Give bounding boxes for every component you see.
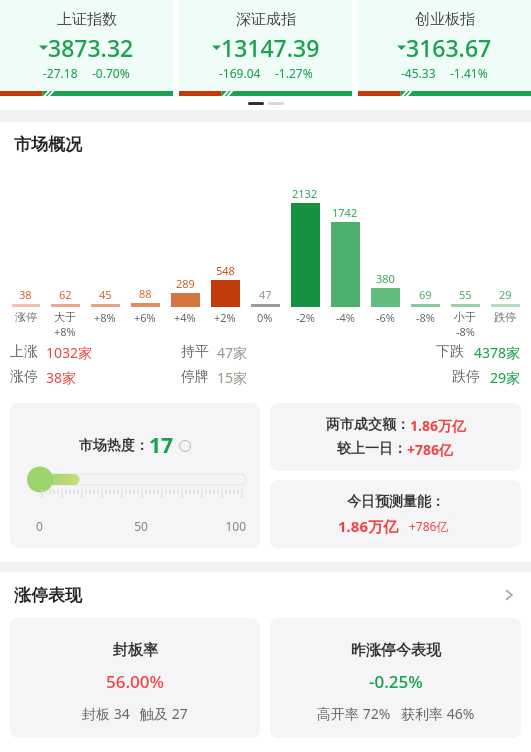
staticText: 13147.39 — [221, 32, 320, 63]
staticText: 0 — [36, 518, 106, 534]
staticText: 涨停 — [15, 310, 37, 324]
staticText: 2132 — [292, 186, 318, 201]
staticText: -0.70% — [92, 65, 130, 81]
staticText: 56.00% — [106, 670, 165, 693]
button[interactable]: 两市成交额： — [270, 403, 521, 471]
staticText: -8% — [456, 324, 475, 339]
other: 帮助 — [179, 440, 191, 452]
staticText: 上证指数 — [57, 10, 117, 29]
staticText: 47家 — [217, 343, 248, 362]
staticText: -6% — [376, 310, 395, 325]
staticText: 深证成指 — [236, 10, 296, 29]
staticText: 上涨 — [10, 343, 38, 361]
staticText: 38家 — [46, 368, 77, 387]
staticText: 3873.32 — [48, 32, 134, 63]
staticText: 289 — [176, 276, 195, 291]
staticText: +8% — [54, 324, 76, 339]
staticText: 55 — [459, 287, 472, 302]
staticText: -1.27% — [275, 65, 313, 81]
staticText: 4378家 — [474, 343, 521, 362]
staticText: 下跌 — [436, 343, 464, 361]
staticText: -45.33 — [401, 65, 436, 81]
button[interactable]: 市场热度： — [10, 403, 260, 548]
staticText: 1.86万亿 — [338, 516, 398, 536]
staticText: 47 — [259, 287, 272, 302]
staticText: 两市成交额： — [326, 416, 410, 434]
staticText: -2% — [296, 310, 315, 325]
staticText: 15家 — [217, 368, 248, 387]
staticText: -0.25% — [369, 670, 423, 693]
staticText: 较上一日： — [337, 440, 407, 458]
staticText: 停牌 — [181, 368, 209, 386]
staticText: 获利率 46% — [401, 704, 475, 723]
staticText: 69 — [419, 287, 432, 302]
staticText: 高开率 72% — [317, 704, 391, 723]
staticText: 小于 — [454, 310, 476, 324]
staticText: 跌停 — [494, 310, 516, 324]
staticText: 1032家 — [46, 343, 93, 362]
staticText: -8% — [416, 310, 435, 325]
staticText: 29 — [499, 287, 512, 302]
staticText: 涨停 — [10, 368, 38, 386]
staticText: 548 — [216, 263, 235, 278]
button[interactable]: 昨涨停今表现 — [270, 618, 521, 738]
button[interactable]: 上证指数 — [0, 0, 173, 96]
staticText: 封板率 — [113, 641, 158, 660]
staticText: 跌停 — [452, 368, 480, 386]
staticText: +4% — [174, 310, 196, 325]
staticText: 涨停表现 — [14, 585, 501, 606]
staticText: 3163.67 — [406, 32, 492, 63]
staticText: +8% — [94, 310, 116, 325]
staticText: 1742 — [332, 205, 358, 220]
staticText: -1.41% — [450, 65, 488, 81]
button[interactable]: 涨停表现 — [0, 572, 531, 618]
staticText: +6% — [134, 310, 156, 325]
staticText: +786亿 — [409, 518, 449, 534]
staticText: 今日预测量能： — [347, 493, 445, 511]
staticText: +786亿 — [407, 440, 454, 459]
staticText: -4% — [336, 310, 355, 325]
staticText: 88 — [139, 286, 152, 301]
staticText: 封板 34 — [82, 704, 130, 723]
staticText: 持平 — [181, 343, 209, 361]
staticText: 0% — [257, 310, 273, 325]
staticText: 45 — [99, 287, 112, 302]
staticText: 50 — [106, 518, 176, 534]
staticText: 380 — [376, 271, 395, 286]
staticText: -27.18 — [43, 65, 78, 81]
staticText: +2% — [214, 310, 236, 325]
staticText: -169.04 — [219, 65, 261, 81]
staticText: 38 — [19, 287, 32, 302]
button[interactable]: 深证成指 — [179, 0, 352, 96]
staticText: 17 — [149, 431, 174, 460]
staticText: 触及 27 — [140, 704, 188, 723]
staticText: 市场概况 — [14, 134, 82, 155]
staticText: 29家 — [490, 368, 521, 387]
staticText: 100 — [176, 518, 246, 534]
staticText: 昨涨停今表现 — [351, 641, 441, 660]
other: 更多 — [501, 587, 517, 603]
button[interactable]: 封板率 — [10, 618, 260, 738]
button[interactable]: 今日预测量能： — [270, 480, 521, 548]
staticText: 市场热度： — [79, 437, 149, 455]
staticText: 创业板指 — [415, 10, 475, 29]
staticText: 大于 — [54, 310, 76, 324]
staticText: 1.86万亿 — [410, 416, 466, 435]
button[interactable]: 创业板指 — [358, 0, 531, 96]
staticText: 62 — [59, 287, 72, 302]
